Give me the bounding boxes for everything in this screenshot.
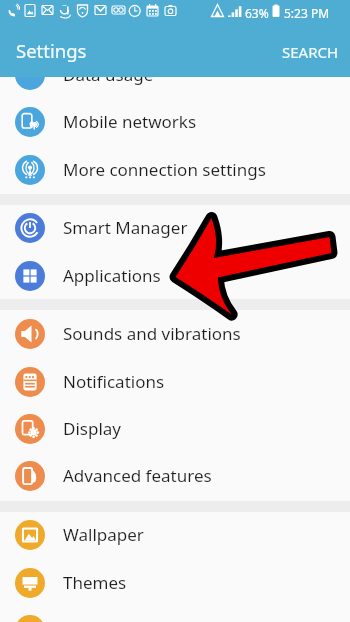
staticText: Smart Manager (63, 216, 188, 239)
button[interactable]: Notifications (0, 358, 350, 405)
button[interactable]: Advanced features (0, 452, 350, 499)
button[interactable]: Smart Manager (0, 204, 350, 251)
button[interactable]: Mobile networks (0, 98, 350, 145)
button[interactable]: More connection settings (0, 146, 350, 193)
button[interactable]: Themes (0, 559, 350, 606)
button[interactable]: Wallpaper (0, 511, 350, 558)
staticText: 63% (245, 5, 269, 21)
button[interactable]: Data usage (0, 51, 350, 98)
staticText: Data usage (63, 63, 154, 86)
staticText: Advanced features (63, 464, 212, 487)
button[interactable]: Sounds and vibrations (0, 310, 350, 357)
button[interactable]: Applications (0, 252, 350, 299)
staticText: Mobile networks (63, 110, 197, 133)
staticText: 5:23 PM (284, 5, 330, 21)
staticText: SEARCH (282, 42, 339, 62)
staticText: Applications (63, 264, 161, 287)
button[interactable]: SEARCH (266, 29, 350, 71)
staticText: More connection settings (63, 158, 266, 181)
staticText: Themes (63, 571, 127, 594)
staticText: Settings (16, 38, 87, 63)
staticText: Notifications (63, 370, 165, 393)
staticText: Wallpaper (63, 523, 144, 546)
staticText: Display (63, 417, 121, 440)
staticText: Sounds and vibrations (63, 322, 241, 345)
button[interactable]: Display (0, 405, 350, 452)
